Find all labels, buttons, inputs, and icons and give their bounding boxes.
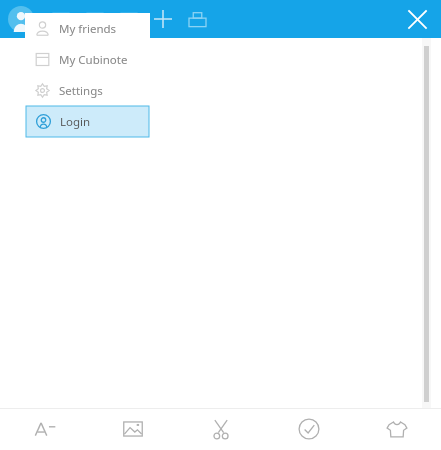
- button[interactable]: Text size: [0, 408, 89, 450]
- button[interactable]: Close: [399, 1, 435, 37]
- staticText: My Cubinote: [59, 52, 128, 68]
- button[interactable]: Add: [146, 2, 180, 36]
- button[interactable]: Settings: [25, 75, 150, 106]
- staticText: My friends: [59, 21, 117, 37]
- button[interactable]: My Cubinote: [25, 44, 150, 75]
- button[interactable]: Image: [89, 408, 177, 450]
- button[interactable]: Login: [26, 106, 149, 137]
- staticText: Settings: [59, 83, 103, 99]
- button[interactable]: Print: [180, 2, 214, 36]
- button[interactable]: Open: [78, 2, 112, 36]
- button[interactable]: Done: [265, 408, 353, 450]
- button[interactable]: Account: [6, 4, 36, 34]
- button[interactable]: My friends: [25, 13, 150, 44]
- button[interactable]: Save: [44, 2, 78, 36]
- staticText: Login: [60, 114, 91, 130]
- button[interactable]: Folder: [112, 2, 146, 36]
- button[interactable]: Shirt: [353, 408, 441, 450]
- button[interactable]: Cut: [177, 408, 265, 450]
